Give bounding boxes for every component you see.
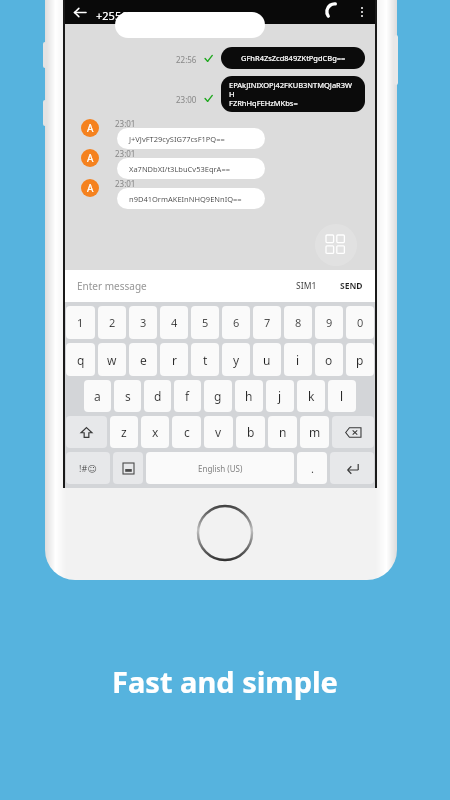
staticText: l [340, 388, 344, 404]
button[interactable]: 9 [315, 306, 343, 339]
button[interactable]: n [268, 416, 297, 448]
staticText: o [325, 352, 333, 368]
staticText: +255678258676 [96, 8, 178, 23]
button[interactable]: A [81, 149, 99, 167]
button[interactable]: g [204, 380, 232, 412]
staticText: 6 [233, 315, 240, 330]
button[interactable]: A [81, 179, 99, 197]
button[interactable]: y [222, 343, 250, 376]
staticText: 9 [326, 315, 333, 330]
button[interactable]: l [328, 380, 356, 412]
button[interactable]: u [253, 343, 281, 376]
button[interactable]: A [81, 119, 99, 137]
button[interactable]: 8 [284, 306, 312, 339]
button[interactable]: x [141, 416, 169, 448]
button[interactable]: 4 [160, 306, 188, 339]
staticText: a [94, 388, 101, 404]
staticText: v [215, 424, 222, 440]
staticText: c [184, 424, 190, 440]
button[interactable]: SIM1 [296, 280, 317, 292]
button[interactable]: 2 [98, 306, 126, 339]
staticText: t [203, 352, 208, 368]
button[interactable]: EPAkJINIXOPj42FKUB3NTMQJaR3WH FZRhHqFEHz… [229, 76, 357, 112]
staticText: j [278, 388, 282, 404]
button[interactable]: 7 [253, 306, 281, 339]
button[interactable]: c [172, 416, 201, 448]
staticText: 23:01 [115, 178, 136, 189]
button[interactable]: m [300, 416, 329, 448]
button[interactable]: z [110, 416, 138, 448]
button[interactable]: Xa7NDbXI/t3LbuCv53EqrA== [129, 158, 265, 179]
staticText: 3 [140, 315, 147, 330]
staticText: !#☺ [79, 462, 97, 474]
button[interactable]: t [191, 343, 219, 376]
staticText: r [172, 352, 177, 368]
button[interactable]: Call [323, 0, 347, 24]
button[interactable]: p [346, 343, 374, 376]
button[interactable]: Back [67, 0, 91, 24]
staticText: 1 [77, 315, 84, 330]
button[interactable]: Enter message [63, 270, 377, 302]
button[interactable]: Apps [315, 224, 357, 266]
staticText: d [154, 388, 162, 404]
staticText: n9D41OrmAKEInNHQ9ENnIQ== [129, 194, 242, 204]
button[interactable]: i [284, 343, 312, 376]
button[interactable]: More options [351, 1, 373, 23]
button[interactable]: J+VJvFT29cySIG77csF1PQ== [129, 128, 265, 149]
staticText: . [311, 461, 314, 476]
staticText: p [356, 352, 364, 368]
button[interactable]: 0 [346, 306, 374, 339]
button[interactable]: a [84, 380, 111, 412]
staticText: 22:56 [176, 54, 197, 65]
button[interactable]: h [235, 380, 263, 412]
button[interactable]: n9D41OrmAKEInNHQ9ENnIQ== [129, 188, 265, 209]
button[interactable]: w [98, 343, 126, 376]
button[interactable]: s [114, 380, 141, 412]
staticText: n [279, 424, 287, 440]
staticText: x [152, 424, 159, 440]
staticText: s [125, 388, 131, 404]
staticText: u [263, 352, 271, 368]
staticText: g [214, 388, 222, 404]
staticText: i [296, 352, 300, 368]
button[interactable]: f [174, 380, 201, 412]
button[interactable]: r [160, 343, 188, 376]
staticText: 2 [109, 315, 116, 330]
staticText: m [309, 424, 321, 440]
button[interactable] [115, 12, 265, 38]
staticText: h [245, 388, 253, 404]
staticText: 5 [202, 315, 209, 330]
staticText: English (US) [198, 463, 243, 474]
button[interactable]: Keyboard settings [113, 452, 143, 484]
staticText: 7 [264, 315, 271, 330]
button[interactable]: e [129, 343, 157, 376]
staticText: A [87, 181, 94, 195]
button[interactable]: Backspace [332, 416, 374, 448]
button[interactable]: Symbols [66, 452, 110, 484]
button[interactable]: 5 [191, 306, 219, 339]
button[interactable]: . [297, 452, 327, 484]
staticText: J+VJvFT29cySIG77csF1PQ== [129, 134, 225, 144]
staticText: EPAkJINIXOPj42FKUB3NTMQJaR3WH FZRhHqFEHz… [229, 80, 357, 109]
staticText: y [233, 352, 240, 368]
staticText: z [121, 424, 127, 440]
button[interactable]: k [297, 380, 325, 412]
button[interactable]: SEND [340, 280, 363, 292]
button[interactable]: d [144, 380, 171, 412]
staticText: k [308, 388, 315, 404]
other: Home [196, 504, 254, 562]
button[interactable]: v [204, 416, 233, 448]
button[interactable]: 3 [129, 306, 157, 339]
staticText: 4 [171, 315, 178, 330]
button[interactable]: Shift [66, 416, 107, 448]
button[interactable]: b [236, 416, 265, 448]
button[interactable]: q [66, 343, 95, 376]
button[interactable]: j [266, 380, 294, 412]
button[interactable]: 1 [66, 306, 95, 339]
button[interactable]: Enter [330, 452, 374, 484]
button[interactable]: o [315, 343, 343, 376]
staticText: f [185, 388, 190, 404]
button[interactable]: English (US) [146, 452, 294, 484]
button[interactable]: GFhR4ZsZcd849ZKtPgdCBg== [221, 47, 365, 69]
button[interactable]: 6 [222, 306, 250, 339]
